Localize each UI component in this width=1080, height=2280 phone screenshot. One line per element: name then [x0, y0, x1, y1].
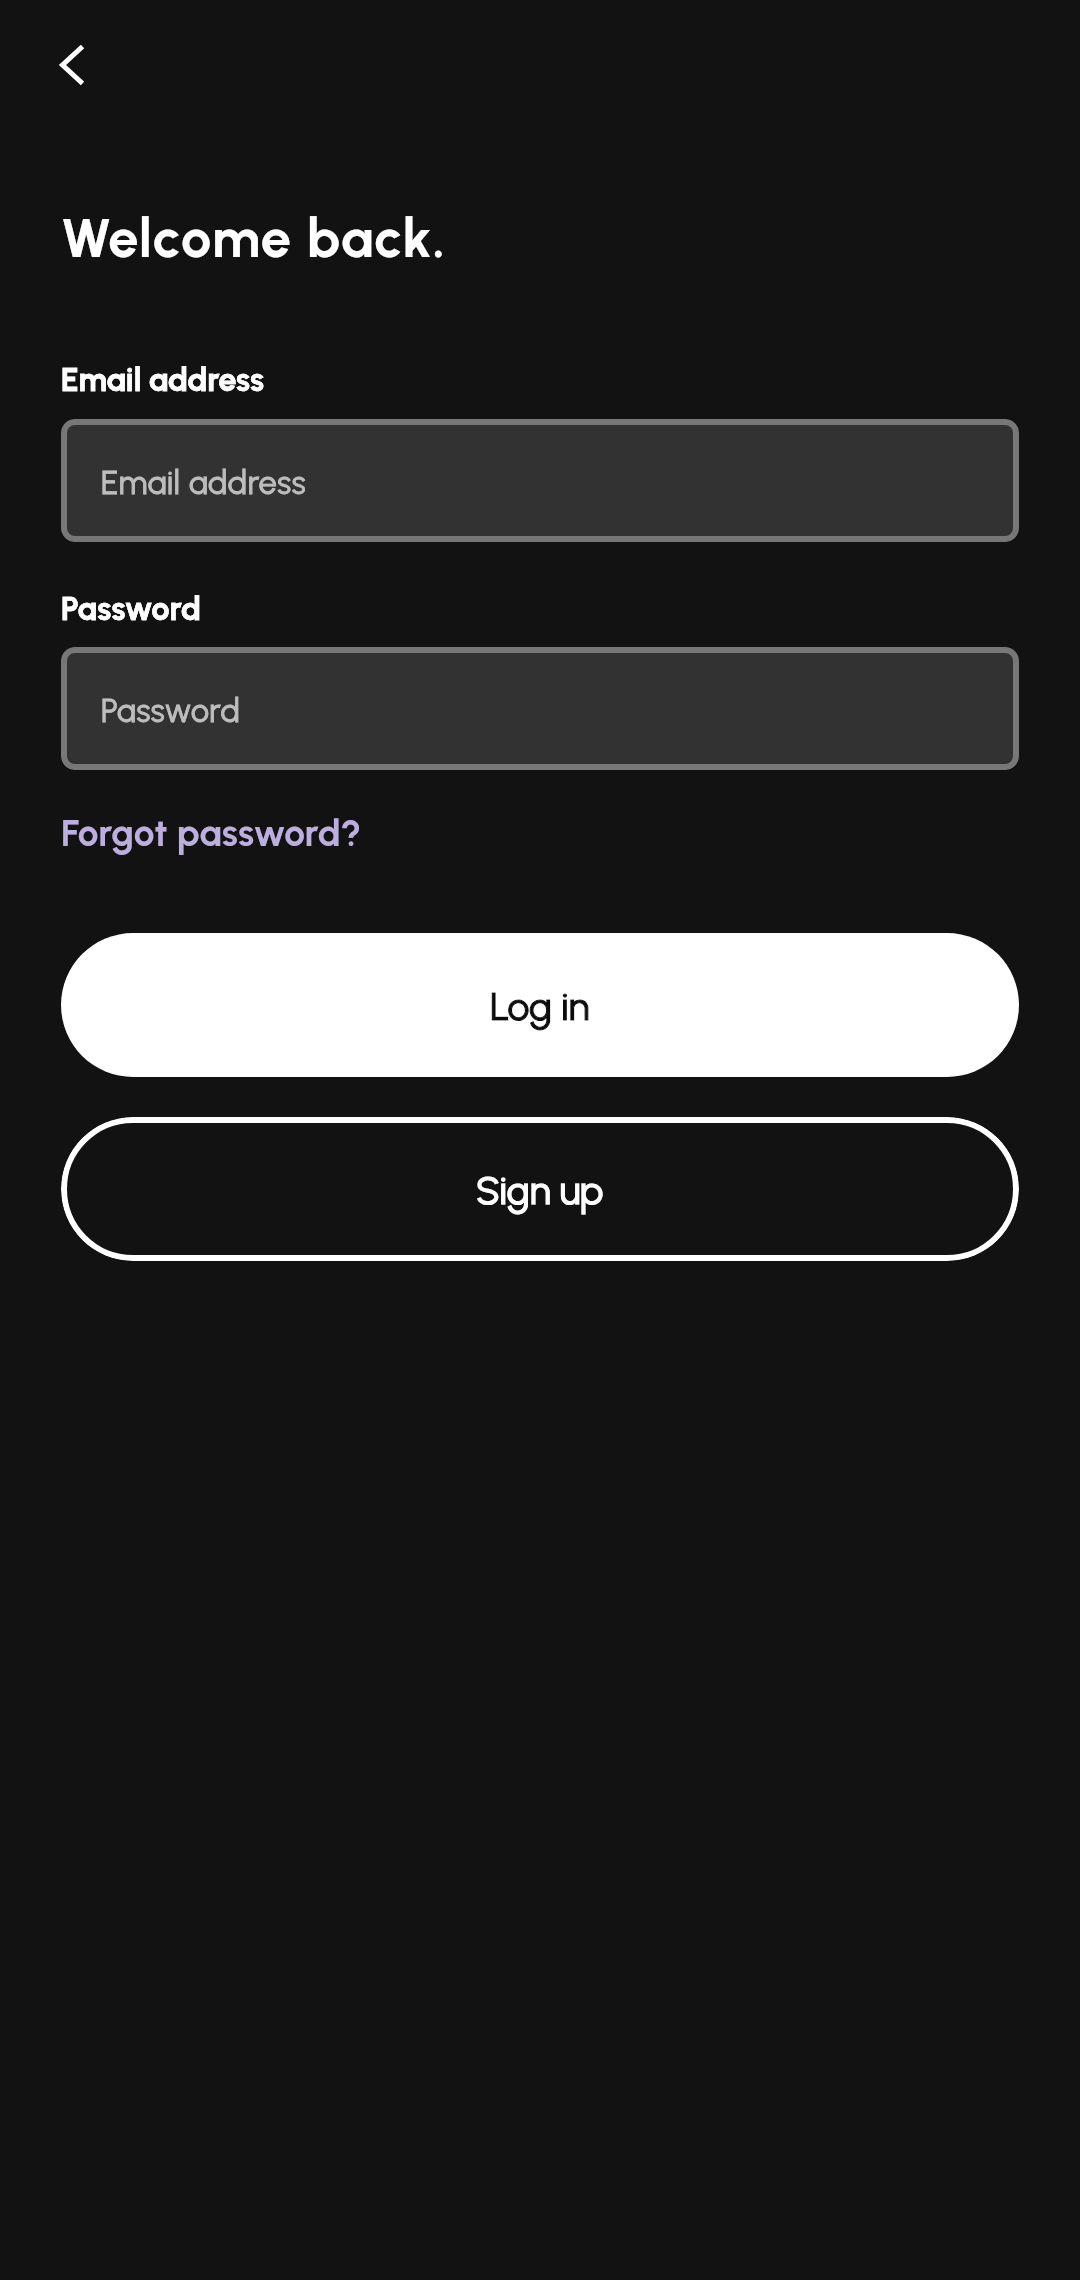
- staticText: Welcome back.: [61, 206, 447, 271]
- button[interactable]: Back: [36, 29, 108, 101]
- staticText: Password: [61, 590, 202, 628]
- staticText: Password: [101, 692, 241, 730]
- staticText: Sign up: [476, 1167, 604, 1214]
- staticText: Email address: [101, 464, 307, 502]
- staticText: Password: [101, 692, 241, 730]
- staticText: Email address: [101, 464, 307, 502]
- staticText: Email address: [61, 361, 264, 399]
- button[interactable]: Log in: [61, 933, 1019, 1077]
- button[interactable]: Email address: [61, 419, 1019, 542]
- staticText: Email address: [61, 361, 264, 399]
- staticText: Sign up: [476, 1167, 604, 1214]
- staticText: Log in: [490, 983, 590, 1030]
- staticText: Forgot password?: [61, 811, 362, 855]
- button[interactable]: Forgot password?: [61, 811, 362, 855]
- button[interactable]: Sign up: [61, 1117, 1019, 1261]
- staticText: Log in: [490, 983, 590, 1030]
- button[interactable]: Password: [61, 647, 1019, 770]
- staticText: Password: [61, 590, 202, 628]
